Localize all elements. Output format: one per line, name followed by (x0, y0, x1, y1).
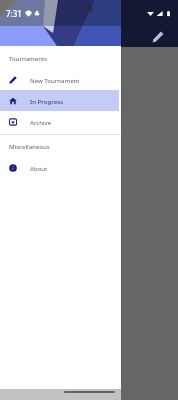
button[interactable]: About (0, 157, 119, 178)
button[interactable]: New Tournament (0, 69, 119, 90)
button[interactable]: Archive (0, 111, 119, 132)
staticText: About (30, 164, 48, 172)
button[interactable]: Edit (147, 26, 169, 48)
staticText: Archive (30, 118, 52, 126)
staticText: 7:31 (6, 8, 22, 19)
staticText: Miscellaneous (9, 143, 50, 151)
staticText: Tournaments (9, 55, 48, 63)
staticText: New Tournament (30, 76, 80, 84)
button[interactable]: In Progress (0, 90, 119, 111)
staticText: In Progress (30, 97, 64, 105)
